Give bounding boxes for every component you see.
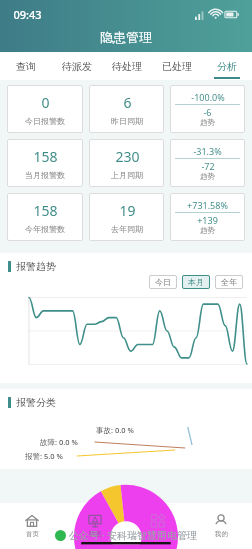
staticText: 应用 [152, 530, 165, 538]
button[interactable]: -31.3% [170, 139, 245, 187]
staticText: 待处理 [112, 60, 142, 73]
staticText: 我的 [215, 530, 228, 538]
button[interactable]: 分析 [202, 52, 252, 80]
staticText: -72 [201, 160, 215, 172]
staticText: 230 [115, 147, 140, 166]
staticText: 待派发 [62, 60, 92, 73]
staticText: 今年报警数 [25, 224, 65, 234]
staticText: 本月 [188, 277, 204, 287]
button[interactable]: 查询 [0, 52, 51, 80]
staticText: 158 [33, 201, 58, 220]
staticText: +139 [197, 214, 218, 226]
staticText: 故障: 0.0 % [40, 437, 78, 447]
button[interactable]: 19 [89, 193, 164, 241]
button[interactable]: 首页 [0, 503, 63, 549]
button[interactable]: -100.0% [170, 85, 245, 133]
staticText: 09:43 [13, 7, 42, 22]
button[interactable]: 本月 [182, 275, 210, 289]
staticText: 趋势 [200, 172, 215, 181]
staticText: 分析 [217, 60, 237, 73]
button[interactable]: 158 [7, 193, 83, 241]
staticText: +731.58% [187, 199, 228, 211]
button[interactable]: 待处理 [102, 52, 152, 80]
staticText: 昨日同期 [111, 116, 143, 126]
staticText: 去年同期 [111, 224, 143, 234]
staticText: 查询 [16, 60, 36, 73]
staticText: 趋势 [200, 118, 215, 127]
staticText: 6 [123, 93, 132, 112]
staticText: 已处理 [162, 60, 192, 73]
staticText: 当月报警数 [25, 170, 65, 180]
button[interactable]: 我的 [189, 503, 252, 549]
staticText: 公众号 · 安科瑞智慧用电管理 [69, 528, 197, 542]
staticText: 158 [33, 147, 58, 166]
staticText: 19 [119, 201, 136, 220]
staticText: -31.3% [193, 145, 222, 157]
staticText: 事故: 0.0 % [96, 425, 134, 435]
button[interactable]: 0 [7, 85, 83, 133]
button[interactable]: 6 [89, 85, 164, 133]
staticText: 隐患管理 [100, 29, 152, 45]
staticText: 报警趋势 [16, 260, 56, 273]
staticText: 隐患 [89, 530, 102, 538]
button[interactable]: +731.58% [170, 193, 245, 241]
staticText: 全年 [221, 277, 237, 287]
button[interactable]: 应用 [126, 503, 189, 549]
staticText: 今日报警数 [25, 116, 65, 126]
button[interactable]: 今日 [149, 275, 177, 289]
staticText: 今日 [155, 277, 171, 287]
staticText: 上月同期 [111, 170, 143, 180]
button[interactable]: 全年 [215, 275, 243, 289]
button[interactable]: 已处理 [152, 52, 202, 80]
staticText: -6 [203, 106, 212, 118]
staticText: 报警: 5.0 % [25, 451, 63, 461]
staticText: 趋势 [200, 226, 215, 235]
staticText: -100.0% [191, 91, 225, 103]
button[interactable]: 隐患 [63, 503, 126, 549]
button[interactable]: 158 [7, 139, 83, 187]
staticText: 首页 [26, 530, 39, 538]
staticText: 报警分类 [16, 396, 56, 409]
staticText: 0 [41, 93, 50, 112]
button[interactable]: 230 [89, 139, 164, 187]
button[interactable]: 待派发 [51, 52, 102, 80]
